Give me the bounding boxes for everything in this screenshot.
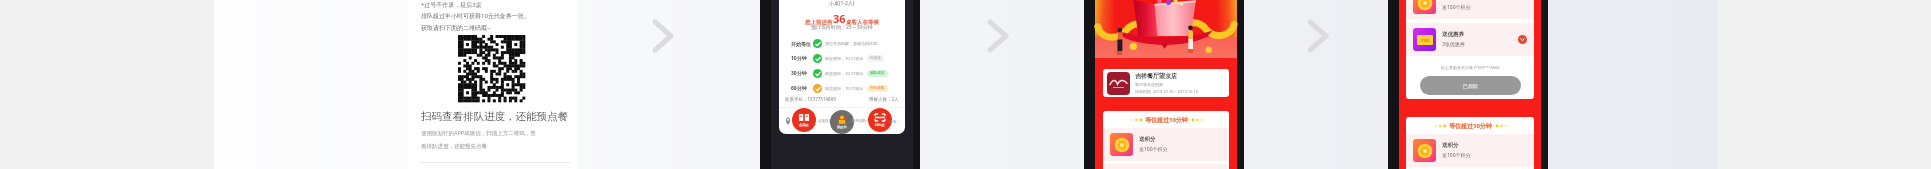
staticText: 30分钟 bbox=[791, 70, 807, 77]
staticText: 用餐人数：2人 bbox=[869, 96, 899, 102]
staticText: 提交通知，10:17发出 bbox=[825, 71, 864, 76]
staticText: 每日等礼送到家 bbox=[1135, 82, 1163, 87]
staticText: 等位超过10分钟 bbox=[1449, 122, 1492, 130]
staticText: 提交通知，10:17发出 bbox=[825, 56, 864, 61]
staticText: 取号排队中 bbox=[852, 119, 870, 124]
button[interactable]: 展开详情 bbox=[1518, 35, 1527, 44]
staticText: 联系手机：13777514869 bbox=[785, 96, 836, 102]
staticText: 您上前还有 bbox=[805, 19, 833, 26]
staticText: *过号不作废，延后3桌 bbox=[421, 1, 482, 9]
staticText: 详情 › bbox=[889, 119, 899, 124]
staticText: 小桌(1-2人) bbox=[829, 0, 855, 7]
button[interactable]: 扫码点餐 bbox=[868, 108, 892, 132]
staticText: 预计等待时间：25～30分钟 bbox=[811, 24, 873, 31]
button[interactable]: Next step bbox=[653, 19, 674, 53]
staticText: 送100个积分 bbox=[1139, 146, 1168, 153]
staticText: 领取成功 bbox=[870, 71, 885, 76]
staticText: 60分钟 bbox=[791, 85, 807, 92]
staticText: 等位专员提醒，查看店内环境 › bbox=[825, 41, 880, 46]
staticText: 10分钟 bbox=[791, 55, 807, 62]
staticText: 送优惠券 bbox=[1442, 31, 1464, 38]
staticText: 提交通知，10:17发出 bbox=[825, 86, 864, 91]
staticText: 以上奖励发放入账户169***6666 bbox=[1441, 65, 1500, 70]
staticText: 点菜区 bbox=[799, 123, 809, 127]
staticText: 已领取 bbox=[1463, 83, 1478, 89]
staticText: 送100个积分 bbox=[1442, 152, 1471, 159]
staticText: 送100个积分 bbox=[1442, 4, 1471, 11]
staticText: 送积分 bbox=[1442, 142, 1459, 149]
button[interactable]: 查看菜单 bbox=[792, 108, 816, 132]
staticText: 36 bbox=[833, 11, 846, 26]
staticText: 活动时间 2019.10.10－2019.10.10 bbox=[1135, 89, 1198, 94]
staticText: 桌客人在等候 bbox=[846, 19, 879, 26]
staticText: 扫码点 bbox=[875, 123, 885, 127]
staticText: 已发送 bbox=[870, 56, 881, 61]
staticText: 排队中 bbox=[837, 125, 847, 129]
staticText: 扫码查看排队进度，还能预点餐 bbox=[421, 110, 568, 123]
button[interactable]: Next step bbox=[1308, 19, 1329, 53]
staticText: 使用医划行的APP或微信，扫描上方二维码，查 看排队进度，还能预先点餐 bbox=[421, 129, 536, 149]
staticText: 3张优惠券 bbox=[1442, 41, 1465, 48]
button[interactable]: Next step bbox=[988, 19, 1009, 53]
button[interactable]: 已领取 bbox=[1420, 76, 1521, 95]
staticText: ¥100 bbox=[1421, 38, 1430, 43]
staticText: 送积分 bbox=[1139, 136, 1156, 143]
staticText: 等待领取 bbox=[870, 86, 885, 91]
staticText: 排队超过半小时可获得10元代金券一张。 获取请扫下面的二维码哦~ bbox=[421, 12, 530, 31]
button[interactable]: 取号排队 bbox=[830, 110, 854, 134]
staticText: 等位超过10分钟 bbox=[1145, 116, 1188, 124]
staticText: 吉祥餐厅望京店 bbox=[1135, 72, 1177, 80]
staticText: 开始等位 bbox=[791, 41, 811, 47]
staticText: 点菜区查看 bbox=[818, 119, 836, 124]
